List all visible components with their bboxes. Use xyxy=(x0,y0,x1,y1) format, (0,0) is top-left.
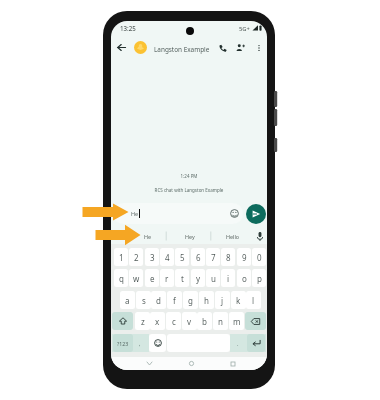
staticText: Hello xyxy=(226,233,240,240)
staticText: l xyxy=(252,295,255,306)
staticText: 5 xyxy=(180,252,185,263)
staticText: n xyxy=(218,316,223,327)
button[interactable]: i xyxy=(221,269,235,287)
staticText: c xyxy=(172,316,176,327)
button[interactable]: 1 xyxy=(114,248,128,266)
staticText: t xyxy=(181,273,184,284)
button[interactable]: Shift xyxy=(112,312,133,330)
button[interactable]: Home xyxy=(181,357,201,370)
button[interactable]: Back xyxy=(139,357,159,370)
staticText: 13:25 xyxy=(120,24,136,32)
staticText: d xyxy=(156,295,161,306)
button[interactable]: f xyxy=(167,291,182,309)
staticText: r xyxy=(165,273,169,284)
staticText: y xyxy=(196,273,201,284)
staticText: a xyxy=(125,295,130,306)
staticText: f xyxy=(173,295,176,306)
staticText: 4 xyxy=(165,252,170,263)
button[interactable]: 2 xyxy=(129,248,143,266)
button[interactable]: Backspace xyxy=(245,312,266,330)
staticText: h xyxy=(204,295,209,306)
button[interactable]: Voice input xyxy=(251,227,267,245)
button[interactable]: ?123 xyxy=(113,334,133,352)
button[interactable]: 9 xyxy=(237,248,251,266)
staticText: He xyxy=(144,233,152,240)
button[interactable]: a xyxy=(120,291,135,309)
staticText: 1:24 PM xyxy=(111,173,267,179)
button[interactable]: n xyxy=(213,312,228,330)
button[interactable]: x xyxy=(150,312,165,330)
button[interactable]: e xyxy=(145,269,159,287)
button[interactable]: y xyxy=(191,269,205,287)
staticText: 6 xyxy=(196,252,201,263)
staticText: 7 xyxy=(211,252,216,263)
button[interactable]: t xyxy=(175,269,189,287)
button[interactable]: Add person xyxy=(235,42,246,53)
staticText: s xyxy=(142,295,146,306)
staticText: m xyxy=(233,316,241,327)
button[interactable]: Send xyxy=(246,204,266,224)
button[interactable]: 0 xyxy=(252,248,266,266)
button[interactable]: 4 xyxy=(160,248,174,266)
staticText: 2 xyxy=(134,252,139,263)
staticText: e xyxy=(150,273,155,284)
button[interactable]: , xyxy=(134,334,146,352)
button[interactable]: k xyxy=(231,291,246,309)
button[interactable]: z xyxy=(135,312,150,330)
button[interactable]: 8 xyxy=(221,248,235,266)
button[interactable]: h xyxy=(199,291,214,309)
button[interactable]: More options xyxy=(253,42,264,53)
button[interactable]: q xyxy=(114,269,128,287)
button[interactable]: w xyxy=(129,269,143,287)
staticText: 3 xyxy=(150,252,155,263)
button[interactable]: 3 xyxy=(145,248,159,266)
button[interactable]: s xyxy=(136,291,151,309)
button[interactable]: Back xyxy=(115,41,127,53)
button[interactable]: p xyxy=(252,269,266,287)
button[interactable]: Call xyxy=(217,42,228,53)
button[interactable]: m xyxy=(229,312,244,330)
staticText: k xyxy=(236,295,241,306)
button[interactable]: v xyxy=(182,312,197,330)
staticText: He xyxy=(131,210,139,217)
button[interactable]: r xyxy=(160,269,174,287)
staticText: Hey xyxy=(185,233,195,240)
button[interactable]: 6 xyxy=(191,248,205,266)
button[interactable]: g xyxy=(183,291,198,309)
staticText: w xyxy=(133,273,140,284)
button[interactable]: 7 xyxy=(206,248,220,266)
button[interactable]: l xyxy=(246,291,261,309)
staticText: i xyxy=(227,273,230,284)
button[interactable]: Recents xyxy=(223,357,243,370)
staticText: z xyxy=(141,316,145,327)
staticText: Langston Example xyxy=(154,45,210,54)
button[interactable]: c xyxy=(166,312,181,330)
staticText: b xyxy=(202,316,207,327)
staticText: 5G+ xyxy=(239,25,250,33)
button[interactable]: o xyxy=(237,269,251,287)
button[interactable]: u xyxy=(206,269,220,287)
staticText: x xyxy=(155,316,160,327)
staticText: 1 xyxy=(119,252,124,263)
staticText: v xyxy=(187,316,192,327)
staticText: g xyxy=(188,295,193,306)
button[interactable]: Emoji xyxy=(149,334,166,352)
staticText: 9 xyxy=(242,252,247,263)
button[interactable]: He xyxy=(113,203,243,224)
button[interactable]: d xyxy=(151,291,166,309)
staticText: p xyxy=(257,273,262,284)
button[interactable]: He xyxy=(131,227,165,245)
button[interactable]: b xyxy=(197,312,212,330)
staticText: 0 xyxy=(257,252,262,263)
button[interactable]: Enter xyxy=(247,334,265,352)
button[interactable]: j xyxy=(215,291,230,309)
button[interactable]: Hey xyxy=(173,227,207,245)
staticText: ?123 xyxy=(117,340,129,347)
button[interactable]: Hello xyxy=(216,227,250,245)
staticText: o xyxy=(242,273,247,284)
button[interactable]: 5 xyxy=(175,248,189,266)
staticText: j xyxy=(221,295,224,306)
staticText: 8 xyxy=(226,252,231,263)
